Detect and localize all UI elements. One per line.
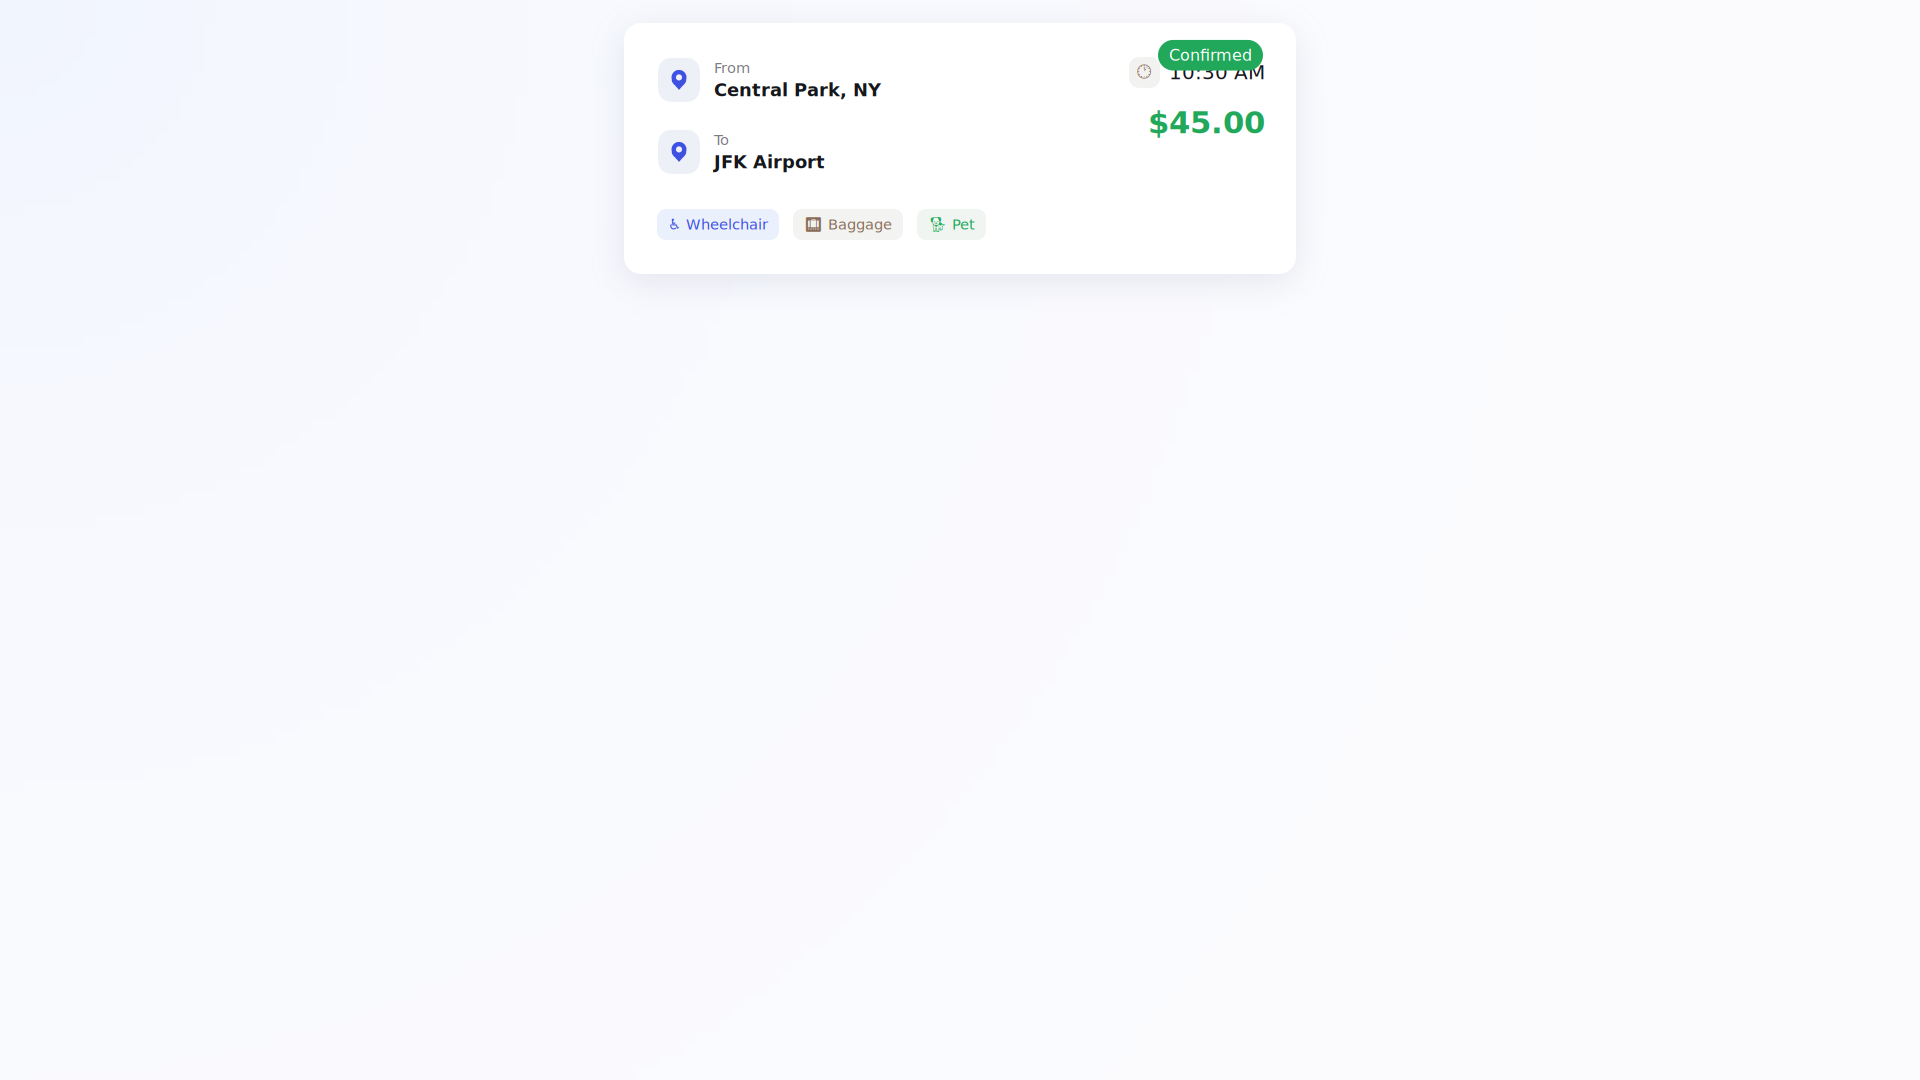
staticText: Wheelchair — [686, 216, 768, 233]
staticText: Central Park, NY — [714, 79, 881, 100]
staticText: ♿︎ — [668, 216, 681, 233]
staticText: Pet — [952, 216, 975, 233]
button[interactable]: 🐕︎ — [917, 209, 986, 240]
button[interactable]: 🛄︎ — [793, 209, 903, 240]
button[interactable]: ♿︎ — [657, 209, 779, 240]
staticText: 🛄︎ — [804, 216, 823, 233]
button[interactable]: Confirmed — [1158, 40, 1263, 70]
button[interactable]: To — [658, 130, 1296, 174]
staticText: 🕐︎ — [1137, 63, 1152, 82]
staticText: 🐕︎ — [928, 216, 947, 233]
button[interactable]: From — [658, 58, 1296, 102]
staticText: 10:30 AM — [1169, 61, 1265, 84]
staticText: To — [714, 131, 729, 149]
staticText: Confirmed — [1169, 46, 1252, 64]
staticText: JFK Airport — [714, 151, 825, 172]
staticText: Baggage — [828, 216, 892, 233]
staticText: From — [714, 59, 750, 77]
staticText: $45.00 — [1148, 105, 1265, 141]
